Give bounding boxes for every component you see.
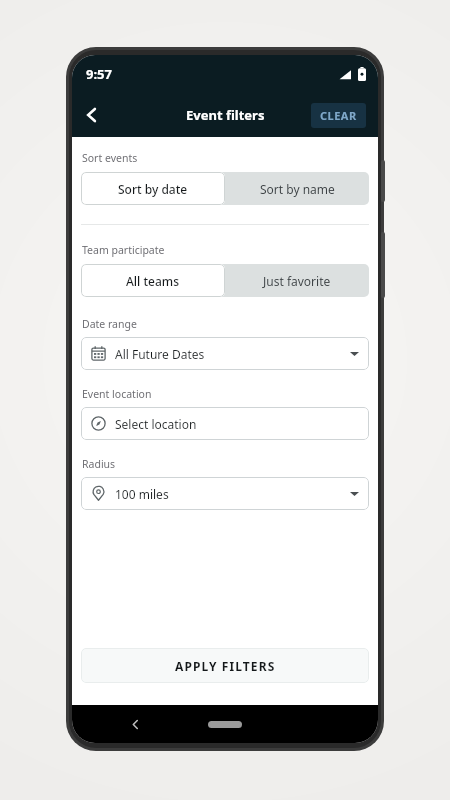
button[interactable]: CLEAR <box>311 103 366 128</box>
button[interactable]: Sort by date <box>81 172 225 205</box>
staticText: Select location <box>115 416 197 432</box>
button[interactable]: Just favorite <box>225 264 369 297</box>
staticText: 9:57 <box>86 65 112 83</box>
button[interactable]: Home <box>208 721 242 728</box>
staticText: Sort events <box>82 151 138 165</box>
staticText: Event filters <box>186 106 265 124</box>
staticText: All Future Dates <box>115 346 205 362</box>
staticText: Radius <box>82 457 116 471</box>
staticText: APPLY FILTERS <box>175 658 276 674</box>
staticText: CLEAR <box>320 108 357 123</box>
button[interactable]: APPLY FILTERS <box>81 648 369 683</box>
button[interactable]: Back <box>118 707 152 741</box>
staticText: Event location <box>82 387 152 401</box>
staticText: Team participate <box>82 243 165 257</box>
staticText: 100 miles <box>115 486 169 502</box>
button[interactable]: 100 miles <box>81 477 369 510</box>
staticText: Sort by date <box>118 181 188 197</box>
button[interactable]: All Future Dates <box>81 337 369 370</box>
staticText: Sort by name <box>260 181 335 197</box>
button[interactable]: All teams <box>81 264 225 297</box>
staticText: Date range <box>82 317 137 331</box>
button[interactable]: Select location <box>81 407 369 440</box>
staticText: All teams <box>126 273 180 289</box>
button[interactable]: Back <box>72 95 112 135</box>
button[interactable]: Sort by name <box>225 172 369 205</box>
staticText: Just favorite <box>263 273 331 289</box>
